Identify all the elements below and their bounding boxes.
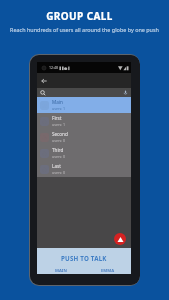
staticText: EMMA	[101, 268, 115, 274]
button[interactable]: Voice search	[122, 89, 129, 96]
staticText: users: 1	[52, 106, 66, 111]
staticText: Second	[52, 131, 68, 137]
staticText: GROUP CALL	[46, 9, 113, 23]
staticText: users: 0	[52, 170, 66, 175]
staticText: Reach hundreds of users all around the g…	[10, 26, 159, 33]
staticText: users: 0	[52, 154, 66, 159]
staticText: users: 0	[52, 138, 66, 143]
button[interactable]: Last	[37, 161, 131, 177]
button[interactable]: Back	[37, 74, 50, 87]
button[interactable]: Search	[39, 89, 47, 97]
button[interactable]: PUSH TO TALK	[37, 248, 131, 268]
staticText: 12:48	[49, 65, 58, 70]
staticText: MAIN	[55, 268, 67, 274]
staticText: PUSH TO TALK	[61, 254, 107, 262]
staticText: users: 1	[52, 122, 66, 127]
staticText: Third	[52, 147, 64, 153]
staticText: First	[52, 115, 62, 121]
staticText: Last	[52, 163, 61, 169]
staticText: Main	[52, 99, 63, 105]
button[interactable]: Main	[37, 97, 131, 113]
button[interactable]: First	[37, 113, 131, 129]
button[interactable]: Third	[37, 145, 131, 161]
button[interactable]: Second	[37, 129, 131, 145]
button[interactable]: Emergency alert	[114, 233, 126, 245]
